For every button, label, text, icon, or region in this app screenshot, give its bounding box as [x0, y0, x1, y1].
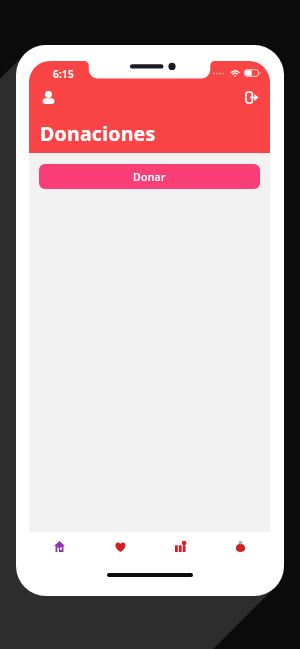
button[interactable]: Profile [37, 86, 59, 108]
button[interactable]: Home [29, 532, 90, 580]
button[interactable]: Donations [210, 532, 270, 580]
staticText: 6:15 [53, 67, 75, 81]
staticText: Donar [133, 170, 166, 184]
button[interactable]: Donar [39, 164, 260, 189]
staticText: Donaciones [40, 120, 156, 147]
button[interactable]: Statistics [150, 532, 210, 580]
button[interactable]: Favorites [90, 532, 150, 580]
button[interactable]: Log out [240, 86, 262, 108]
